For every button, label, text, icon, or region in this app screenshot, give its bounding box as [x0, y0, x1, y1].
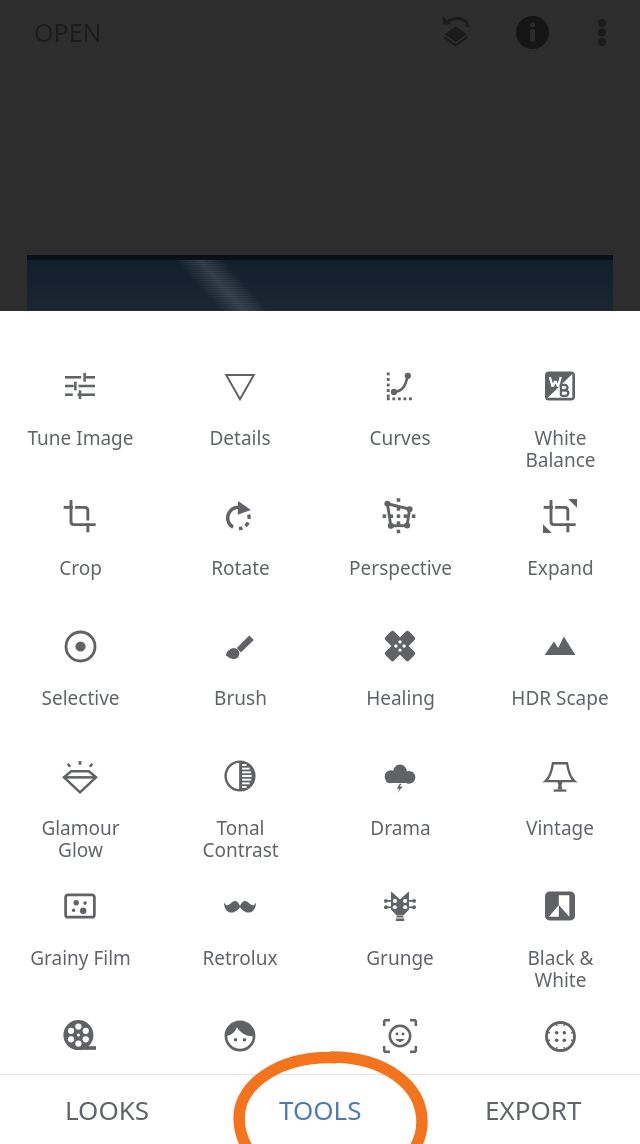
- staticText: White Balance: [525, 425, 596, 473]
- staticText: Black & White: [527, 945, 594, 993]
- button[interactable]: Details: [160, 311, 320, 441]
- button[interactable]: Tune Image: [0, 311, 160, 441]
- staticText: Perspective: [349, 555, 452, 581]
- button[interactable]: More options: [578, 8, 626, 56]
- staticText: Retrolux: [202, 945, 278, 971]
- staticText: Selective: [41, 685, 120, 711]
- staticText: Healing: [366, 685, 435, 711]
- button[interactable]: LOOKS: [0, 1074, 214, 1144]
- staticText: Grainy Film: [30, 945, 131, 971]
- button[interactable]: Retrolux: [160, 831, 320, 961]
- button[interactable]: Undo: [430, 8, 478, 56]
- staticText: Tune Image: [27, 425, 134, 451]
- staticText: Crop: [59, 555, 102, 581]
- staticText: TOOLS: [279, 1092, 362, 1127]
- button[interactable]: Vintage: [480, 701, 640, 831]
- button[interactable]: TOOLS: [214, 1074, 427, 1144]
- staticText: Expand: [527, 555, 594, 581]
- staticText: Details: [209, 425, 271, 451]
- button[interactable]: Tonal Contrast: [160, 701, 320, 831]
- button[interactable]: Grainy Film: [0, 831, 160, 961]
- button[interactable]: Black & White: [480, 831, 640, 961]
- button[interactable]: Brush: [160, 571, 320, 701]
- button[interactable]: Rotate: [160, 441, 320, 571]
- button[interactable]: Crop: [0, 441, 160, 571]
- button[interactable]: Curves: [320, 311, 480, 441]
- button[interactable]: Grunge: [320, 831, 480, 961]
- staticText: Grunge: [366, 945, 434, 971]
- button[interactable]: Healing: [320, 571, 480, 701]
- button[interactable]: HDR Scape: [480, 571, 640, 701]
- staticText: Face Pose: [356, 1075, 445, 1101]
- button[interactable]: Film: [0, 961, 160, 1074]
- button[interactable]: Expand: [480, 441, 640, 571]
- staticText: Tonal Contrast: [202, 815, 279, 863]
- button[interactable]: Lens Blur: [480, 961, 640, 1074]
- staticText: OPEN: [34, 15, 102, 49]
- staticText: HDR Scape: [511, 685, 609, 711]
- staticText: Brush: [214, 685, 267, 711]
- button[interactable]: Portrait: [160, 961, 320, 1074]
- button[interactable]: Selective: [0, 571, 160, 701]
- staticText: LOOKS: [65, 1092, 150, 1127]
- button[interactable]: White Balance: [480, 311, 640, 441]
- staticText: EXPORT: [485, 1092, 582, 1127]
- staticText: Glamour Glow: [41, 815, 120, 863]
- button[interactable]: Perspective: [320, 441, 480, 571]
- button[interactable]: EXPORT: [427, 1074, 640, 1144]
- staticText: Portrait: [206, 1075, 274, 1101]
- button[interactable]: Info: [508, 8, 556, 56]
- staticText: Vintage: [526, 815, 594, 841]
- button[interactable]: OPEN: [34, 15, 102, 49]
- staticText: Curves: [369, 425, 431, 451]
- button[interactable]: Drama: [320, 701, 480, 831]
- staticText: Rotate: [211, 555, 270, 581]
- button[interactable]: Face Pose: [320, 961, 480, 1074]
- button[interactable]: Glamour Glow: [0, 701, 160, 831]
- staticText: Drama: [370, 815, 431, 841]
